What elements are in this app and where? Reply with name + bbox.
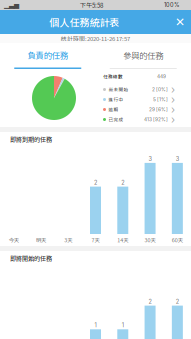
staticText: ✕	[175, 15, 185, 29]
staticText: 即將到期的任務	[10, 135, 52, 143]
staticText: 30天	[145, 236, 156, 244]
staticText: 3天	[64, 236, 72, 244]
staticText: 1	[94, 322, 96, 329]
staticText: 個人任務統計表	[49, 15, 119, 29]
staticText: 逾期	[108, 106, 118, 113]
staticText: ›	[171, 83, 175, 96]
staticText: 3	[176, 155, 179, 162]
staticText: 1	[122, 322, 124, 329]
staticText: 明天	[36, 236, 46, 244]
staticText: 即將開始的任務	[10, 254, 52, 262]
button[interactable]: 已完成	[103, 114, 175, 124]
button[interactable]: Close	[169, 10, 191, 34]
staticText: 2	[94, 179, 97, 186]
staticText: 7天	[91, 236, 99, 244]
staticText: ▁▃▅	[4, 1, 19, 9]
staticText: 已完成	[108, 116, 123, 123]
staticText: 2	[149, 298, 152, 305]
button[interactable]: 進行中	[103, 94, 175, 104]
staticText: 今天	[9, 236, 19, 244]
staticText: 2	[176, 298, 179, 305]
staticText: ›	[171, 103, 175, 116]
button[interactable]: 參與的任務	[95, 43, 191, 69]
staticText: ›	[171, 113, 175, 126]
staticText: 2	[121, 179, 124, 186]
staticText: ›	[171, 93, 175, 106]
staticText: 進行中	[108, 96, 123, 103]
staticText: 3	[149, 155, 152, 162]
button[interactable]: 負責的任務	[0, 43, 95, 69]
staticText: 14天	[117, 236, 128, 244]
button[interactable]: 尚未開始	[103, 84, 175, 94]
staticText: 29 [6%]	[149, 107, 168, 112]
staticText: 5 [1%]	[153, 97, 168, 102]
staticText: 統計時間:2020-11-26 17:57	[61, 34, 130, 43]
staticText: 負責的任務	[28, 49, 68, 61]
staticText: 尚未開始	[108, 86, 128, 93]
staticText: 60天	[172, 236, 183, 244]
staticText: 100%	[164, 2, 179, 8]
staticText: 2 [0%]	[152, 87, 168, 92]
staticText: 449	[157, 74, 166, 79]
staticText: 任務總數	[103, 73, 123, 80]
staticText: 413 [92%]	[144, 117, 168, 122]
staticText: 參與的任務	[123, 49, 163, 61]
button[interactable]: 逾期	[103, 104, 175, 114]
staticText: 下午5:58	[80, 1, 103, 9]
